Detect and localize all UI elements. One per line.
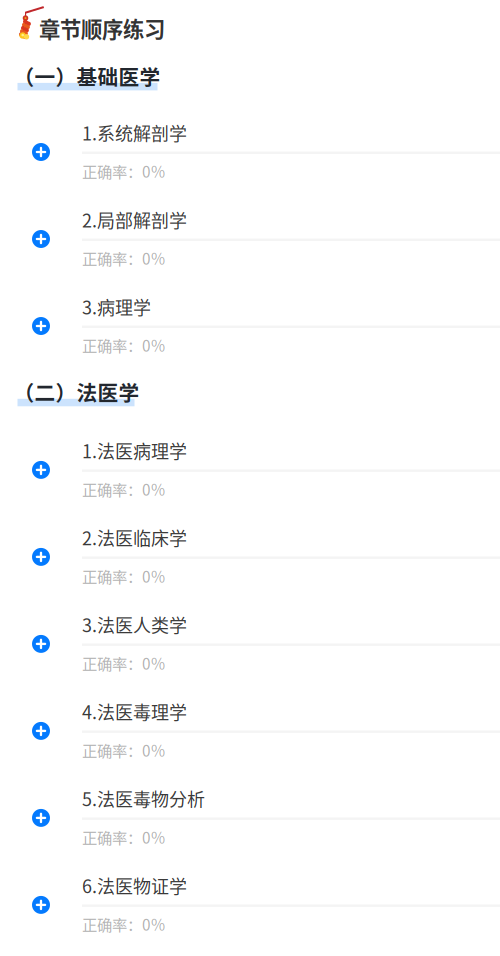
button[interactable]: 3.病理学 xyxy=(0,282,500,369)
staticText: 正确率：0% xyxy=(82,334,165,356)
button[interactable]: 5.法医毒物分析 xyxy=(0,774,500,861)
staticText: 3.法医人类学 xyxy=(82,611,187,637)
staticText: 1.法医病理学 xyxy=(82,437,187,463)
staticText: 1.系统解剖学 xyxy=(82,119,187,146)
staticText: 正确率：0% xyxy=(82,247,165,269)
staticText: 5.法医毒物分析 xyxy=(82,785,205,811)
button[interactable]: 3.法医人类学 xyxy=(0,600,500,687)
staticText: 正确率：0% xyxy=(82,913,165,935)
staticText: （二）法医学 xyxy=(13,377,139,407)
staticText: 正确率：0% xyxy=(82,565,165,587)
button[interactable]: 4.法医毒理学 xyxy=(0,687,500,774)
staticText: 正确率：0% xyxy=(82,739,165,761)
staticText: 2.局部解剖学 xyxy=(82,206,187,233)
staticText: 正确率：0% xyxy=(82,478,165,500)
button[interactable]: 1.法医病理学 xyxy=(0,426,500,513)
staticText: （一）基础医学 xyxy=(13,61,160,91)
staticText: 章节顺序练习 xyxy=(39,13,165,44)
staticText: 4.法医毒理学 xyxy=(82,698,187,724)
button[interactable]: 1.系统解剖学 xyxy=(0,108,500,195)
staticText: 6.法医物证学 xyxy=(82,872,187,898)
staticText: 正确率：0% xyxy=(82,826,165,848)
button[interactable]: 6.法医物证学 xyxy=(0,861,500,948)
staticText: 2.法医临床学 xyxy=(82,524,187,550)
button[interactable]: 2.局部解剖学 xyxy=(0,195,500,282)
staticText: 正确率：0% xyxy=(82,160,165,182)
staticText: 正确率：0% xyxy=(82,652,165,674)
button[interactable]: 2.法医临床学 xyxy=(0,513,500,600)
staticText: 3.病理学 xyxy=(82,293,151,320)
